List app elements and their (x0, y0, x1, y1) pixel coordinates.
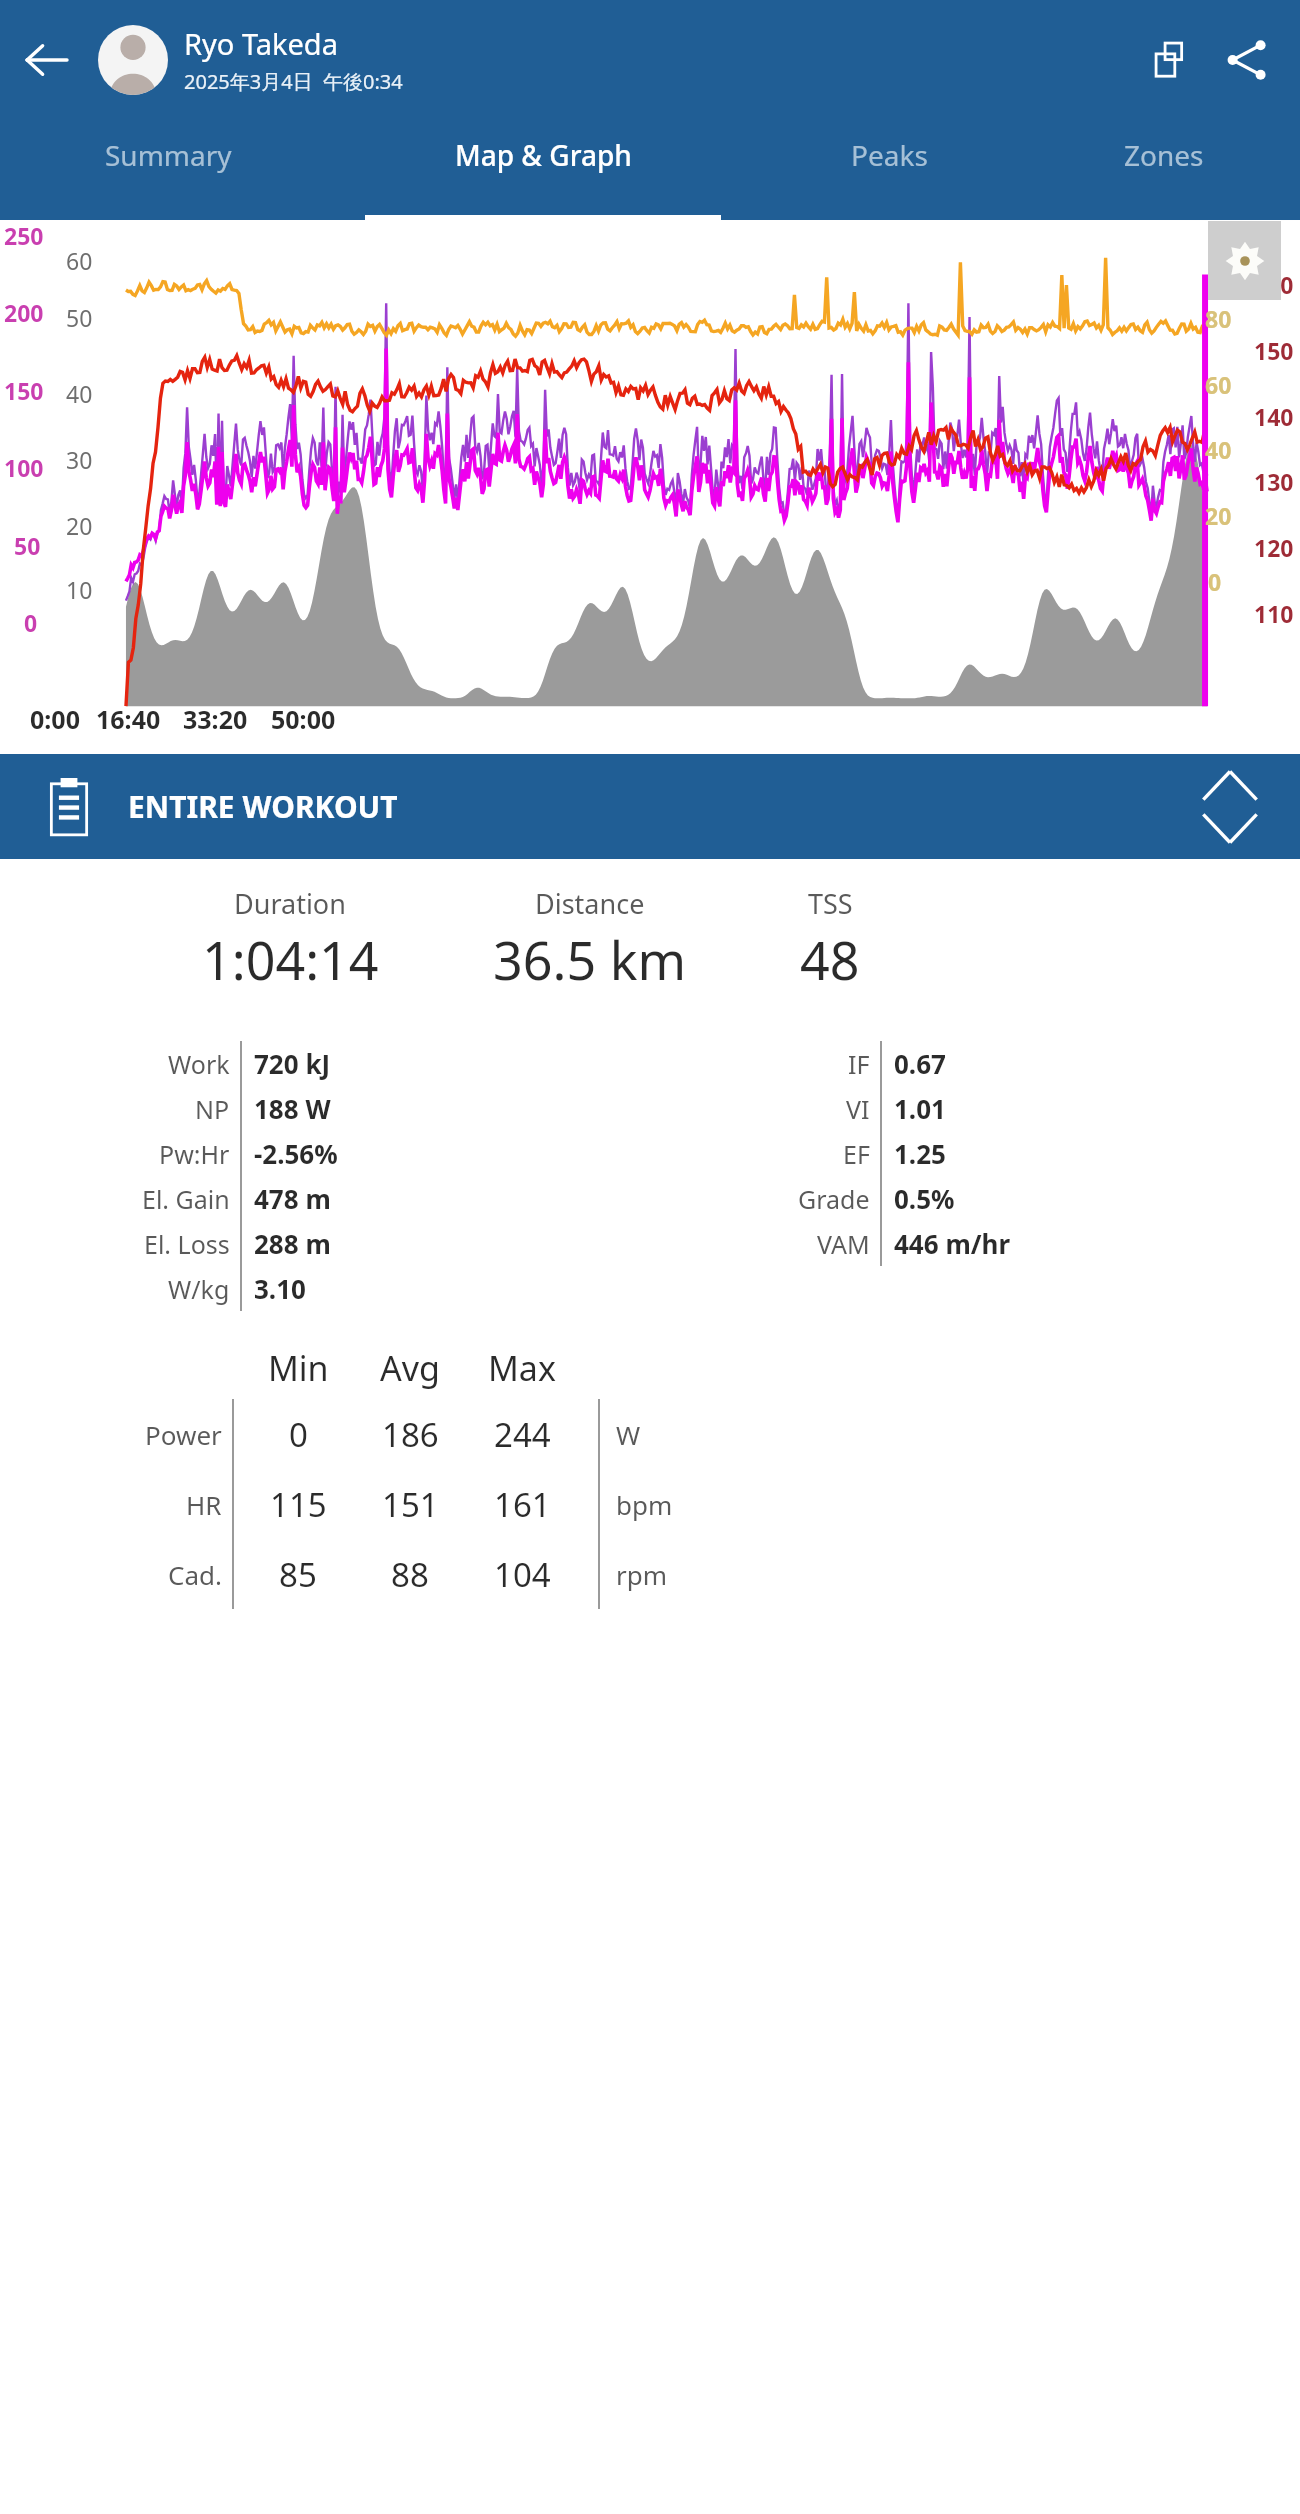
staticText: Pw:Hr (159, 1137, 230, 1171)
staticText: 478 m (254, 1181, 331, 1216)
staticText: Power (145, 1417, 222, 1452)
staticText: 1:04:14 (202, 924, 379, 995)
staticText: 160 (1254, 269, 1294, 300)
staticText: Ryo Takeda (184, 24, 338, 63)
button[interactable]: Zones (1028, 119, 1300, 220)
staticText: 40 (1205, 434, 1232, 465)
staticText: El. Gain (142, 1182, 230, 1216)
staticText: VI (846, 1092, 870, 1126)
staticText: Avg (380, 1345, 440, 1391)
staticText: 720 kJ (254, 1046, 331, 1081)
staticText: 50:00 (271, 702, 336, 736)
staticText: 200 (4, 297, 44, 328)
staticText: 30 (66, 444, 93, 475)
button[interactable]: ENTIRE WORKOUT (0, 754, 1300, 859)
button[interactable]: Peaks (750, 119, 1028, 220)
staticText: 244 (494, 1412, 551, 1457)
staticText: 115 (270, 1482, 327, 1527)
staticText: W/kg (168, 1272, 230, 1306)
staticText: 250 (4, 220, 44, 251)
staticText: 3.10 (254, 1271, 306, 1306)
staticText: 48 (800, 924, 860, 995)
staticText: W (616, 1417, 641, 1452)
staticText: 0.67 (894, 1046, 946, 1081)
staticText: Grade (798, 1182, 870, 1216)
staticText: 188 W (254, 1091, 331, 1126)
staticText: TSS (808, 885, 853, 922)
staticText: 33:20 (183, 702, 248, 736)
staticText: 20 (1205, 500, 1232, 531)
staticText: Max (488, 1345, 556, 1391)
staticText: Peaks (851, 136, 928, 174)
staticText: 10 (66, 574, 93, 605)
staticText: 446 m/hr (894, 1226, 1011, 1261)
button[interactable]: Map & Graph (336, 119, 750, 220)
staticText: 150 (4, 375, 44, 406)
staticText: 151 (382, 1482, 439, 1527)
staticText: 60 (1205, 369, 1232, 400)
staticText: Map & Graph (455, 136, 632, 174)
staticText: 88 (391, 1552, 429, 1597)
staticText: 50 (66, 302, 93, 333)
staticText: Zones (1124, 136, 1204, 174)
staticText: 161 (494, 1482, 551, 1527)
staticText: 40 (66, 378, 93, 409)
staticText: EF (843, 1137, 870, 1171)
staticText: 104 (494, 1552, 551, 1597)
button[interactable]: Chart settings (1208, 221, 1281, 300)
staticText: El. Loss (144, 1227, 230, 1261)
staticText: -2.56% (254, 1136, 338, 1171)
staticText: 130 (1254, 466, 1294, 497)
staticText: 36.5 km (493, 924, 687, 995)
staticText: NP (195, 1092, 230, 1126)
staticText: 60 (66, 245, 93, 276)
staticText: Cad. (168, 1557, 222, 1592)
staticText: 0 (1208, 566, 1222, 597)
staticText: 20 (66, 510, 93, 541)
button[interactable]: Share (1210, 23, 1284, 97)
staticText: Min (268, 1345, 329, 1391)
staticText: Duration (234, 885, 346, 922)
staticText: 0 (24, 607, 38, 638)
staticText: HR (186, 1487, 222, 1522)
staticText: 110 (1254, 598, 1294, 629)
staticText: 16:40 (96, 702, 161, 736)
staticText: 50 (14, 530, 41, 561)
staticText: IF (848, 1047, 870, 1081)
staticText: bpm (616, 1487, 673, 1522)
staticText: 140 (1254, 401, 1294, 432)
staticText: 120 (1254, 532, 1294, 563)
staticText: 0.5% (894, 1181, 955, 1216)
staticText: 288 m (254, 1226, 331, 1261)
staticText: 1.25 (894, 1136, 946, 1171)
button[interactable]: Summary (0, 119, 336, 220)
button[interactable]: Expand section (1180, 757, 1280, 857)
staticText: Work (168, 1047, 230, 1081)
staticText: 150 (1254, 335, 1294, 366)
staticText: ENTIRE WORKOUT (128, 786, 398, 827)
staticText: 1.01 (894, 1091, 946, 1126)
staticText: 100 (4, 452, 44, 483)
staticText: 186 (382, 1412, 439, 1457)
staticText: VAM (817, 1227, 870, 1261)
staticText: rpm (616, 1557, 668, 1592)
staticText: Distance (535, 885, 645, 922)
staticText: 0 (289, 1412, 308, 1457)
button[interactable]: Back (8, 22, 84, 98)
staticText: 2025年3月4日 午後0:34 (184, 68, 403, 95)
staticText: 80 (1205, 303, 1232, 334)
staticText: 0:00 (30, 702, 80, 736)
staticText: Summary (105, 136, 232, 174)
staticText: 85 (279, 1552, 317, 1597)
button[interactable]: Copy workout (1136, 23, 1210, 97)
